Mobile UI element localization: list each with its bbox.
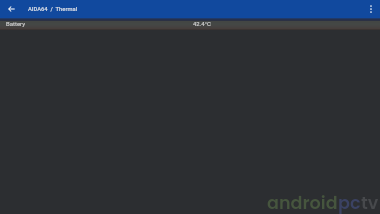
button[interactable]: More options: [362, 0, 380, 18]
button[interactable]: Battery: [0, 21, 380, 30]
staticText: AIDA64 / Thermal: [28, 6, 78, 13]
staticText: android: [267, 191, 338, 214]
staticText: tv: [361, 191, 379, 214]
staticText: Battery: [6, 20, 26, 27]
staticText: 42.4°C: [193, 20, 211, 27]
staticText: pc: [338, 191, 361, 214]
button[interactable]: Navigate up: [0, 0, 22, 18]
